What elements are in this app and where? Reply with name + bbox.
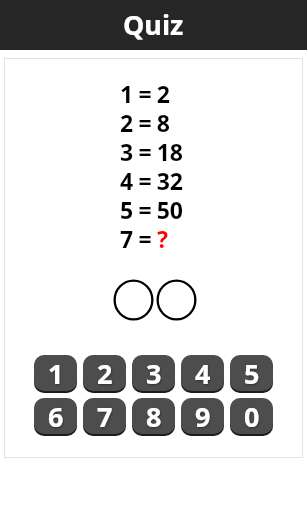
staticText: Quiz xyxy=(123,6,184,43)
button[interactable]: 2 xyxy=(83,355,126,391)
staticText: 2 xyxy=(97,355,113,391)
button[interactable]: 6 xyxy=(34,398,77,434)
button[interactable]: Answer slot xyxy=(156,279,197,321)
button[interactable]: 3 xyxy=(132,355,175,391)
staticText: 0 xyxy=(244,398,260,434)
staticText: ? xyxy=(157,223,168,252)
staticText: 1 xyxy=(48,355,64,391)
staticText: 4 = 32 xyxy=(120,165,183,194)
staticText: 3 xyxy=(146,355,162,391)
button[interactable]: 9 xyxy=(181,398,224,434)
staticText: 3 = 18 xyxy=(120,136,183,165)
button[interactable]: 5 xyxy=(230,355,273,391)
button[interactable]: 8 xyxy=(132,398,175,434)
staticText: 1 = 2 xyxy=(120,78,170,107)
staticText: 4 xyxy=(195,355,211,391)
staticText: 9 xyxy=(195,398,211,434)
staticText: 7 xyxy=(97,398,113,434)
staticText: 5 xyxy=(244,355,260,391)
button[interactable]: Answer slot xyxy=(113,279,154,321)
button[interactable]: 4 xyxy=(181,355,224,391)
staticText: 7 = xyxy=(120,223,157,252)
staticText: 5 = 50 xyxy=(120,194,183,223)
button[interactable]: 7 xyxy=(83,398,126,434)
staticText: 6 xyxy=(48,398,64,434)
staticText: 8 xyxy=(146,398,162,434)
button[interactable]: 1 xyxy=(34,355,77,391)
staticText: 2 = 8 xyxy=(120,107,170,136)
button[interactable]: 0 xyxy=(230,398,273,434)
